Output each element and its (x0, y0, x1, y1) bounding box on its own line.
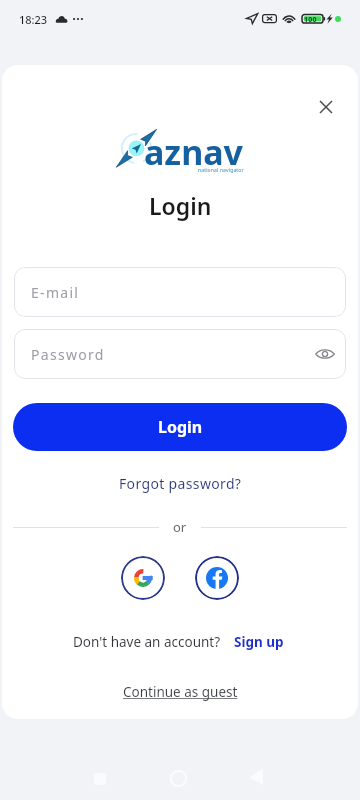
staticText: Login (158, 416, 203, 438)
staticText: Password (31, 345, 105, 364)
button[interactable]: Forgot password? (113, 472, 248, 495)
staticText: or (173, 518, 187, 536)
button[interactable]: Password (14, 329, 346, 379)
button[interactable]: Sign in with Facebook (195, 556, 239, 600)
staticText: national navigator (198, 167, 244, 174)
staticText: 18:23 (19, 12, 48, 27)
button[interactable]: Close (310, 91, 342, 123)
staticText: Don't have an account? (73, 633, 221, 651)
staticText: Sign up (234, 633, 284, 651)
staticText: aznav (144, 129, 244, 175)
button[interactable]: Continue as guest (119, 681, 242, 703)
button[interactable]: E-mail (14, 267, 346, 317)
button[interactable]: Show password (309, 338, 341, 370)
staticText: Continue as guest (123, 683, 238, 701)
button[interactable]: Login (13, 403, 347, 451)
staticText: 100 (304, 15, 317, 25)
staticText: Login (149, 190, 212, 221)
staticText: E-mail (31, 283, 80, 302)
button[interactable]: Sign in with Google (121, 556, 165, 600)
staticText: Forgot password? (119, 474, 242, 493)
button[interactable]: Sign up (234, 633, 284, 651)
